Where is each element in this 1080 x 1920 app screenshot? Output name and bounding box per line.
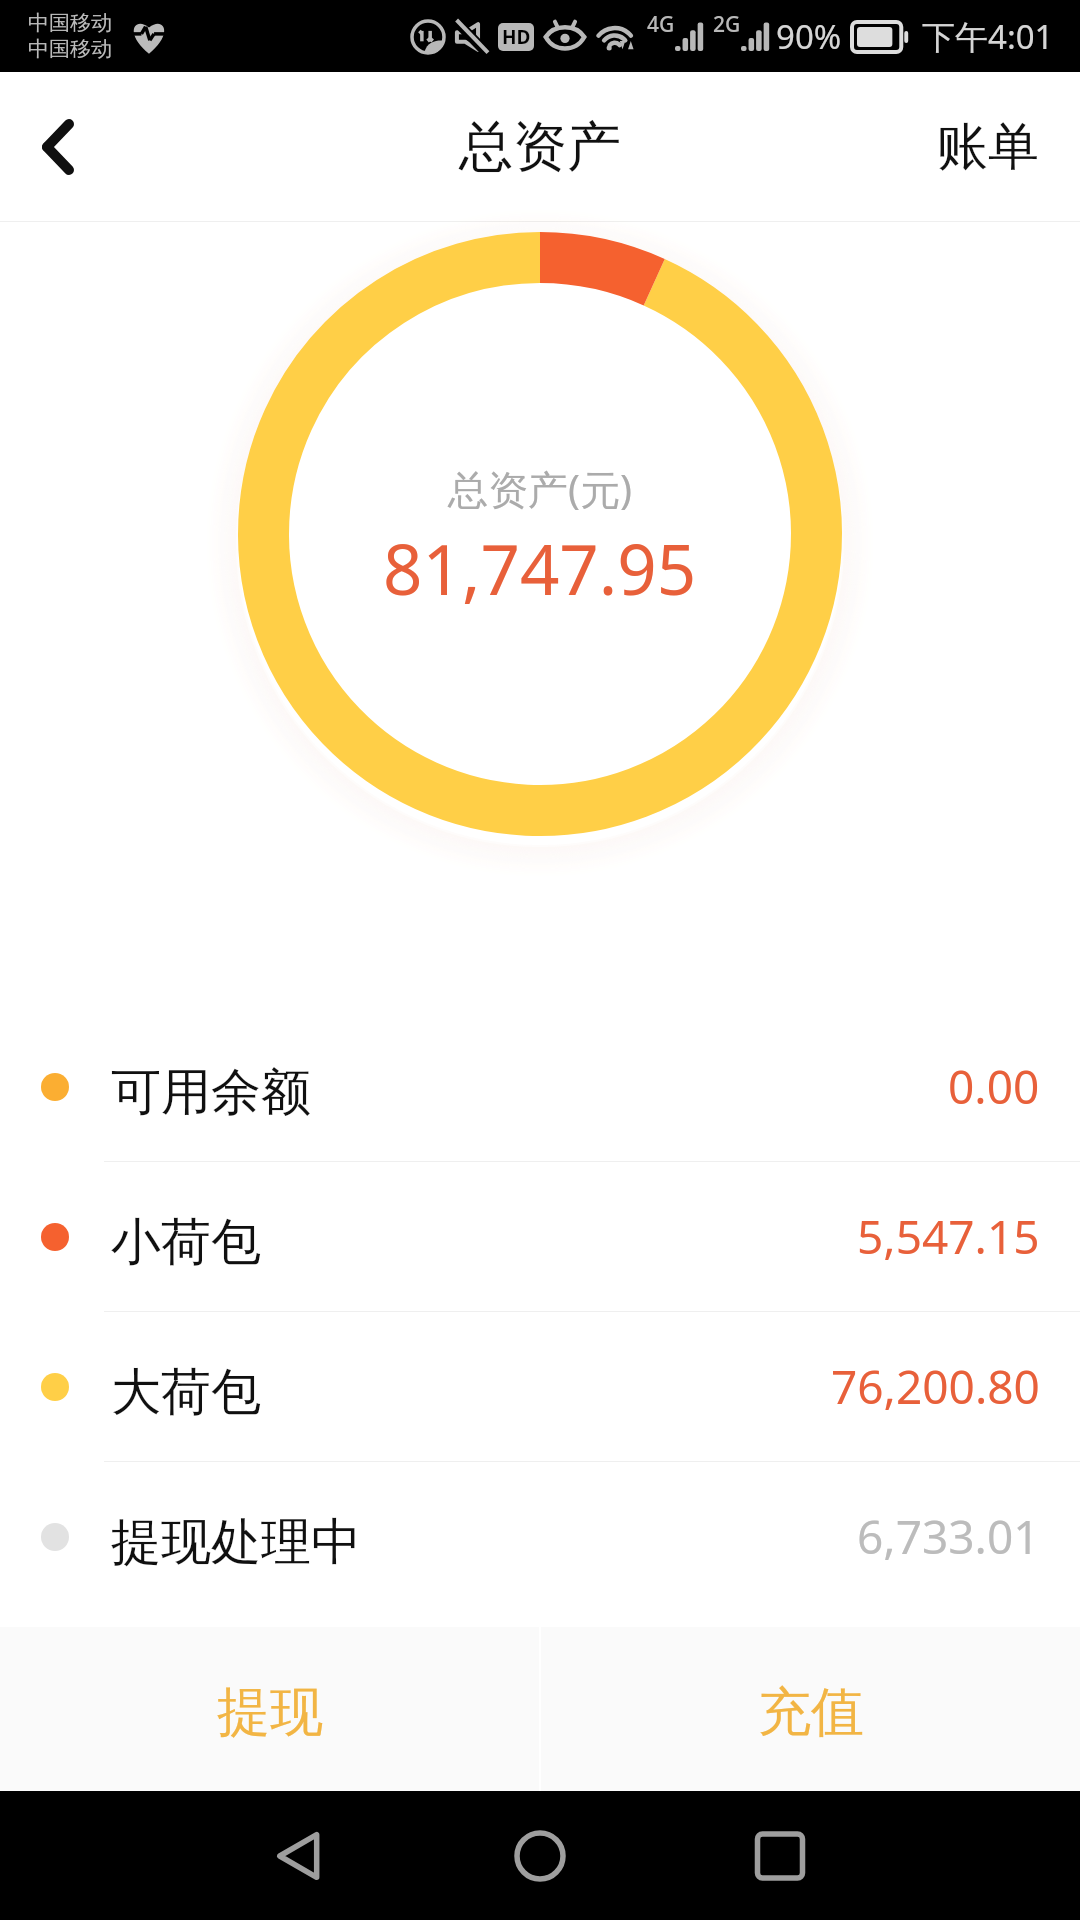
- staticText: 中国移动: [28, 36, 112, 62]
- staticText: 提现处理中: [111, 1511, 361, 1574]
- staticText: 下午4:01: [922, 14, 1054, 59]
- staticText: 可用余额: [111, 1061, 311, 1124]
- button[interactable]: 小荷包: [0, 1162, 1080, 1312]
- staticText: 81,747.95: [383, 521, 697, 615]
- button[interactable]: Recents: [725, 1801, 835, 1911]
- staticText: 账单: [937, 115, 1039, 179]
- staticText: 90%: [776, 14, 842, 59]
- staticText: 提现: [217, 1679, 323, 1746]
- staticText: 4G: [647, 10, 675, 39]
- staticText: 76,200.80: [831, 1355, 1040, 1418]
- button[interactable]: 提现处理中: [0, 1462, 1080, 1611]
- button[interactable]: Home: [485, 1801, 595, 1911]
- button[interactable]: 账单: [896, 72, 1080, 221]
- staticText: 小荷包: [111, 1211, 261, 1274]
- button[interactable]: Back: [0, 72, 120, 221]
- button[interactable]: 大荷包: [0, 1312, 1080, 1462]
- button[interactable]: Back: [244, 1801, 354, 1911]
- staticText: HD: [502, 24, 531, 50]
- staticText: 总资产: [459, 113, 621, 181]
- staticText: 0.00: [948, 1055, 1040, 1118]
- staticText: 充值: [758, 1679, 864, 1746]
- staticText: 中国移动: [28, 10, 112, 36]
- staticText: 2G: [713, 10, 741, 39]
- staticText: 总资产(元): [448, 461, 632, 516]
- button[interactable]: 提现: [0, 1627, 539, 1791]
- button[interactable]: 可用余额: [0, 1012, 1080, 1162]
- button[interactable]: 充值: [541, 1627, 1080, 1791]
- staticText: 5,547.15: [857, 1205, 1040, 1268]
- staticText: 大荷包: [111, 1361, 261, 1424]
- staticText: 6,733.01: [857, 1505, 1040, 1568]
